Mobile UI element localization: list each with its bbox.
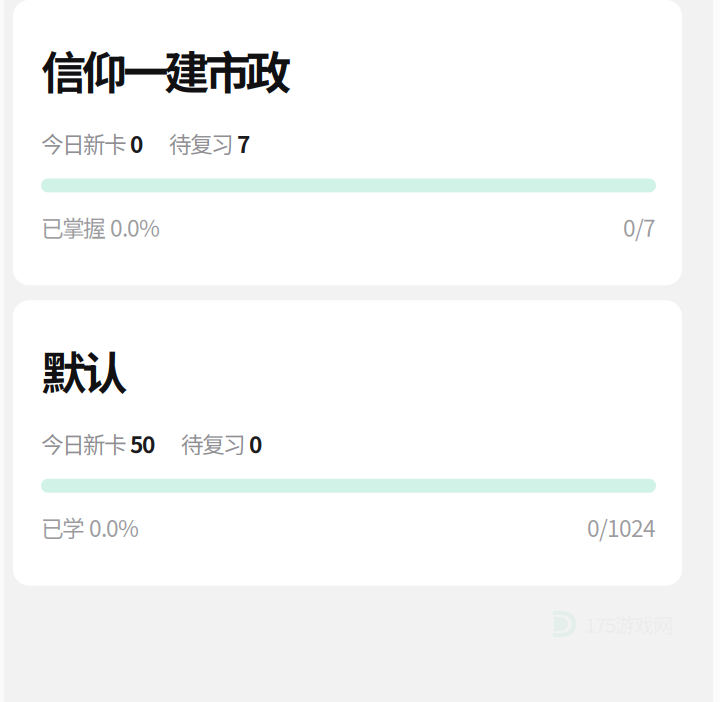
button[interactable]: 信仰一建市政 [13, 0, 682, 285]
staticText: 待复习 [181, 427, 246, 460]
staticText: 默认 [41, 337, 127, 403]
staticText: 50 [130, 427, 155, 460]
staticText: 0.0% [89, 511, 139, 544]
staticText: 今日新卡 [41, 127, 127, 159]
staticText: 7 [237, 127, 250, 159]
staticText: 0.0% [110, 210, 160, 243]
staticText: 0 [130, 127, 143, 159]
staticText: 0 [249, 427, 262, 460]
staticText: 0/1024 [587, 511, 656, 544]
button[interactable]: 默认 [13, 300, 682, 586]
staticText: 已掌握 [41, 210, 106, 243]
staticText: 今日新卡 [41, 427, 127, 460]
staticText: 0/7 [623, 210, 656, 243]
staticText: 已学 [41, 511, 85, 544]
staticText: 信仰一建市政 [41, 37, 291, 103]
staticText: 待复习 [169, 127, 234, 159]
